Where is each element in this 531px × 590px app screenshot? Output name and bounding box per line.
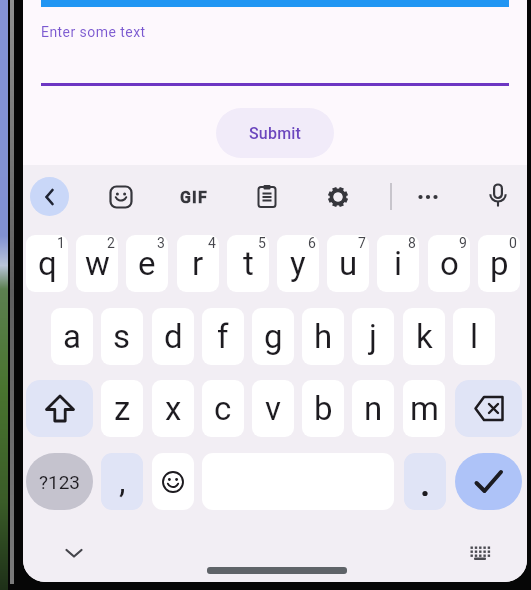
staticText: o	[440, 244, 459, 283]
button[interactable]: r	[177, 235, 219, 292]
staticText: e	[138, 244, 156, 283]
button[interactable]	[255, 184, 279, 208]
button[interactable]: n	[352, 380, 394, 437]
staticText: 2	[107, 235, 115, 251]
staticText: 3	[157, 235, 165, 251]
staticText: k	[416, 317, 433, 356]
button[interactable]: o	[428, 235, 470, 292]
button[interactable]: d	[152, 308, 194, 365]
staticText: j	[369, 317, 377, 356]
button[interactable]	[468, 544, 492, 562]
staticText: 4	[208, 235, 216, 251]
staticText: p	[490, 244, 509, 283]
staticText: t	[243, 244, 254, 283]
staticText: c	[214, 389, 232, 428]
staticText: q	[38, 244, 57, 283]
staticText: 0	[509, 235, 517, 251]
staticText: v	[265, 389, 281, 428]
button[interactable]: ,	[101, 453, 143, 510]
button[interactable]	[64, 546, 84, 560]
staticText: l	[470, 317, 479, 356]
button[interactable]	[404, 453, 446, 510]
staticText: x	[165, 389, 182, 428]
staticText: Enter some text	[41, 24, 146, 40]
button[interactable]	[486, 183, 510, 209]
button[interactable]: e	[126, 235, 168, 292]
button[interactable]: x	[152, 380, 194, 437]
button[interactable]: v	[252, 380, 294, 437]
button[interactable]: l	[453, 308, 495, 365]
button[interactable]: k	[403, 308, 445, 365]
button[interactable]: ?123	[26, 453, 93, 510]
button[interactable]: b	[302, 380, 344, 437]
button[interactable]: Submit	[216, 108, 334, 158]
button[interactable]: z	[101, 380, 143, 437]
staticText: h	[314, 317, 333, 356]
staticText: s	[113, 317, 131, 356]
staticText: u	[339, 244, 358, 283]
button[interactable]	[455, 380, 522, 437]
button[interactable]: s	[101, 308, 143, 365]
staticText: i	[394, 244, 403, 283]
button[interactable]	[326, 185, 350, 209]
button[interactable]: y	[277, 235, 319, 292]
button[interactable]: h	[302, 308, 344, 365]
staticText: 8	[408, 235, 416, 251]
staticText: 1	[57, 235, 65, 251]
staticText: z	[114, 389, 131, 428]
staticText: GIF	[180, 188, 208, 207]
button[interactable]	[109, 185, 133, 209]
staticText: r	[192, 244, 204, 283]
button[interactable]: a	[51, 308, 93, 365]
button[interactable]: f	[202, 308, 244, 365]
staticText: b	[314, 389, 333, 428]
staticText: m	[410, 389, 439, 428]
staticText: g	[264, 317, 283, 356]
button[interactable]	[26, 380, 93, 437]
staticText: y	[290, 244, 306, 283]
staticText: ?123	[39, 471, 81, 493]
button[interactable]: t	[227, 235, 269, 292]
staticText: f	[217, 317, 229, 356]
staticText: a	[63, 317, 81, 356]
button[interactable]: q	[26, 235, 68, 292]
staticText: 5	[258, 235, 266, 251]
button[interactable]: c	[202, 380, 244, 437]
button[interactable]: g	[252, 308, 294, 365]
button[interactable]	[455, 453, 522, 510]
button[interactable]	[30, 177, 69, 216]
button[interactable]: GIF	[174, 183, 214, 211]
staticText: d	[164, 317, 183, 356]
staticText: 7	[358, 235, 366, 251]
button[interactable]: w	[76, 235, 118, 292]
staticText: Submit	[249, 124, 302, 143]
staticText: ,	[119, 462, 126, 501]
button[interactable]: i	[377, 235, 419, 292]
staticText: 9	[459, 235, 467, 251]
button[interactable]	[416, 185, 440, 209]
button[interactable]: j	[352, 308, 394, 365]
staticText: w	[85, 244, 110, 283]
button[interactable]: u	[327, 235, 369, 292]
button[interactable]: p	[478, 235, 520, 292]
button[interactable]	[152, 453, 194, 510]
staticText: 6	[308, 235, 316, 251]
button[interactable]: m	[403, 380, 445, 437]
staticText: n	[364, 389, 383, 428]
